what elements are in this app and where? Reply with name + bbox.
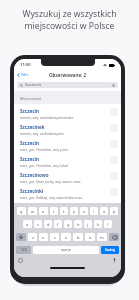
- staticText: m: [100, 235, 104, 240]
- button[interactable]: n: [85, 233, 95, 241]
- button[interactable]: c: [50, 233, 59, 241]
- staticText: r: [53, 209, 55, 214]
- staticText: miasto, woj. zachodniopom.: [20, 131, 65, 136]
- button[interactable]: t: [60, 207, 68, 215]
- staticText: Szczecin: [20, 156, 39, 162]
- staticText: e: [42, 209, 45, 214]
- button[interactable]: f: [54, 220, 62, 228]
- button[interactable]: Szczecin: [14, 184, 121, 200]
- staticText: d: [47, 222, 50, 227]
- button[interactable]: Szukaj: [101, 246, 119, 254]
- button[interactable]: o: [100, 207, 108, 215]
- button[interactable]: Szczecin: [14, 136, 121, 152]
- button[interactable]: Szczecin: [14, 120, 121, 136]
- button[interactable]: e: [39, 207, 48, 215]
- button[interactable]: m: [97, 233, 107, 241]
- button[interactable]: z: [28, 233, 37, 241]
- button[interactable]: j: [84, 220, 92, 228]
- staticText: v: [65, 235, 68, 240]
- button[interactable]: Szczecin: [14, 168, 121, 184]
- staticText: j: [87, 222, 89, 227]
- staticText: l: [107, 222, 109, 227]
- staticText: f: [57, 222, 59, 227]
- staticText: wieś, gm. Stare Juchy, woj. warm.-maz.: [20, 179, 82, 184]
- button[interactable]: Szczecin: [17, 82, 118, 88]
- button[interactable]: Backspace: [109, 233, 119, 241]
- staticText: ek: [39, 124, 45, 130]
- staticText: Szczecin: [20, 140, 39, 146]
- staticText: u: [83, 209, 86, 214]
- button[interactable]: Obserwuj: [110, 140, 118, 148]
- staticText: Szczecin: [20, 108, 39, 114]
- button[interactable]: d: [44, 220, 52, 228]
- button[interactable]: Obserwuj: [110, 172, 118, 180]
- button[interactable]: Obserwuj: [110, 124, 118, 132]
- staticText: Szukaj: [105, 248, 115, 252]
- button[interactable]: Obserwuj: [110, 188, 118, 196]
- button[interactable]: Szczecin: [14, 152, 121, 168]
- staticText: 123: [21, 248, 27, 252]
- staticText: miasto, woj. zachodniopomorskie: [20, 115, 74, 120]
- staticText: t: [63, 209, 65, 214]
- button[interactable]: w: [28, 207, 37, 215]
- other: Clear: [112, 84, 115, 87]
- staticText: w: [31, 209, 35, 214]
- button[interactable]: k: [94, 220, 102, 228]
- button[interactable]: b: [73, 233, 83, 241]
- staticText: n: [89, 235, 92, 240]
- button[interactable]: Obserwuj: [110, 108, 118, 116]
- staticText: Filtr: [21, 72, 29, 78]
- button[interactable]: x: [39, 233, 48, 241]
- staticText: Miejscowość: [20, 96, 42, 101]
- staticText: c: [54, 235, 56, 240]
- button[interactable]: v: [61, 233, 71, 241]
- staticText: a: [26, 222, 29, 227]
- button[interactable]: Back: [14, 72, 29, 78]
- staticText: k: [97, 222, 100, 227]
- button[interactable]: spacja: [33, 246, 99, 254]
- staticText: 11:50: [20, 62, 31, 68]
- button[interactable]: a: [23, 220, 32, 228]
- staticText: h: [77, 222, 80, 227]
- staticText: i: [93, 209, 95, 214]
- button[interactable]: Szczecin: [14, 104, 121, 120]
- button[interactable]: p: [110, 207, 118, 215]
- button[interactable]: y: [70, 207, 78, 215]
- staticText: b: [77, 235, 80, 240]
- staticText: wieś, gm. Chmielno, woj. pom.: [20, 147, 69, 152]
- staticText: p: [113, 209, 116, 214]
- staticText: ki: [39, 188, 44, 194]
- staticText: o: [103, 209, 106, 214]
- button[interactable]: i: [90, 207, 98, 215]
- staticText: Szczecin: [20, 124, 39, 130]
- staticText: Obserwowane: 2: [49, 72, 87, 78]
- button[interactable]: Shift: [16, 233, 26, 241]
- button[interactable]: Obserwuj: [110, 156, 118, 164]
- staticText: Szczecin: [20, 172, 39, 178]
- button[interactable]: 123: [16, 246, 31, 254]
- button[interactable]: r: [50, 207, 58, 215]
- staticText: s: [37, 222, 39, 227]
- button[interactable]: h: [74, 220, 82, 228]
- staticText: spacja: [61, 248, 71, 252]
- staticText: wieś, gm. Gołdap, woj. warmińsko-maz.: [20, 195, 83, 200]
- button[interactable]: s: [34, 220, 42, 228]
- staticText: q: [20, 209, 23, 214]
- staticText: x: [42, 235, 45, 240]
- staticText: owo: [39, 172, 49, 178]
- button[interactable]: g: [64, 220, 72, 228]
- staticText: z: [32, 235, 34, 240]
- button[interactable]: l: [104, 220, 112, 228]
- other: Back: [17, 73, 20, 77]
- staticText: g: [67, 222, 70, 227]
- staticText: Wyszukuj ze wszystkich miejscowości w Po…: [0, 8, 139, 32]
- button[interactable]: q: [17, 207, 26, 215]
- staticText: y: [73, 209, 76, 214]
- other: Emoji: [18, 258, 23, 263]
- staticText: Szczecin: [25, 82, 42, 88]
- staticText: Szczecin: [20, 188, 39, 194]
- staticText: wieś, gm. Chmielno, woj. lubel.: [20, 163, 70, 168]
- other: Dictate: [113, 258, 116, 263]
- button[interactable]: u: [80, 207, 88, 215]
